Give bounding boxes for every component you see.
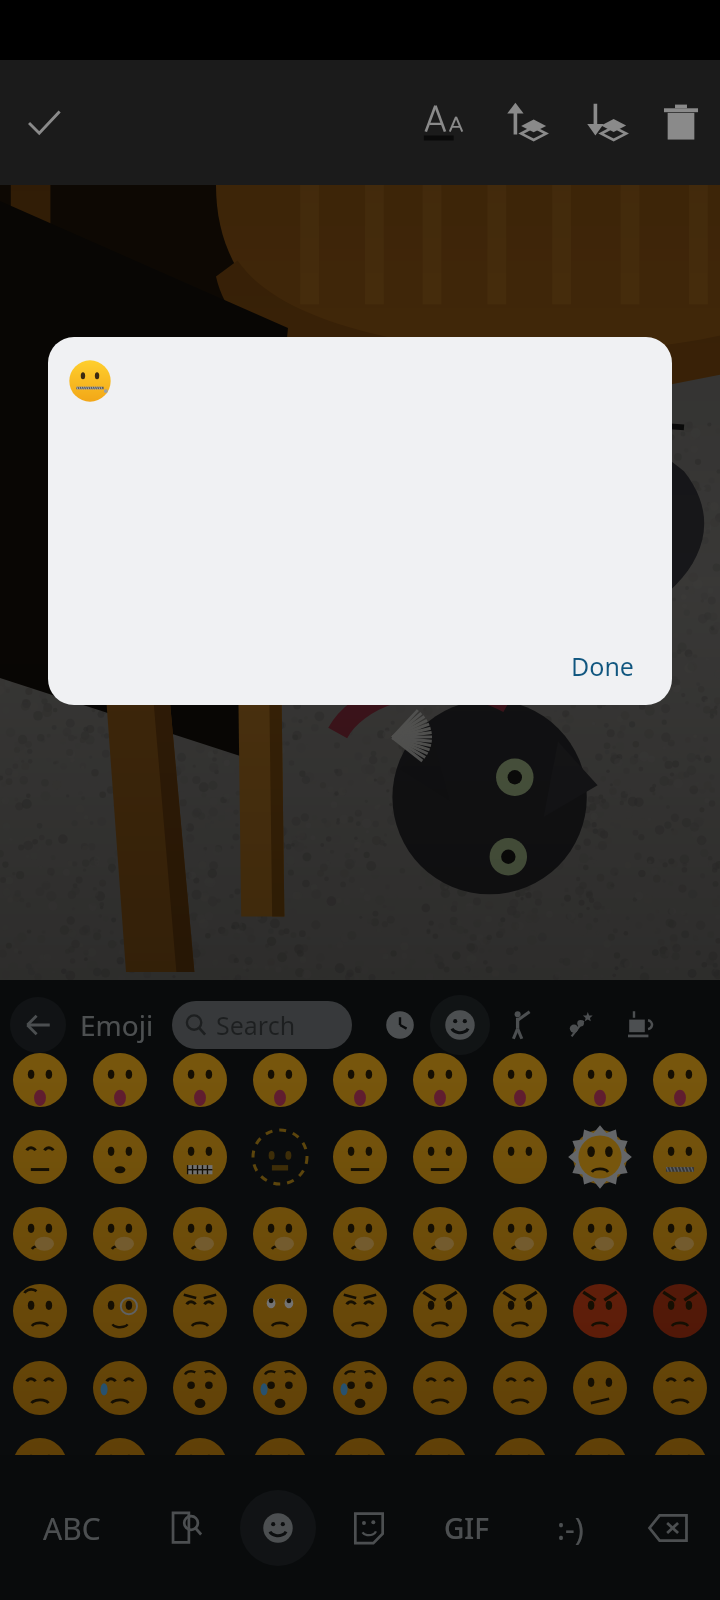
staticText: Search [216,1008,296,1042]
button[interactable]: Back [10,997,66,1053]
button[interactable]: Search [172,1001,352,1049]
button[interactable]: Nature [550,995,610,1055]
button[interactable]: People [490,995,550,1055]
button[interactable]: Backspace [628,1488,708,1568]
staticText: Done [571,649,634,683]
button[interactable]: Delete [650,92,712,154]
staticText: GIF [444,1509,490,1547]
button[interactable]: Done [553,639,652,693]
button[interactable]: GIF [422,1490,512,1566]
button[interactable]: Text style [414,92,476,154]
button[interactable]: Confirm [12,91,76,155]
staticText: ABC [43,1508,101,1549]
staticText: Emoji [80,1006,154,1044]
button[interactable]: Send to back [574,92,636,154]
button[interactable]: Emoji [240,1490,316,1566]
button[interactable]: Search emoji [146,1488,226,1568]
button[interactable]: Smileys [430,995,490,1055]
button[interactable]: Stickers [329,1488,409,1568]
button[interactable]: Recent [370,995,430,1055]
button[interactable]: ABC [12,1490,132,1566]
staticText: :-) [557,1508,584,1549]
button[interactable]: Bring to front [494,92,556,154]
button[interactable]: :-) [525,1490,615,1566]
button[interactable]: Food [610,995,670,1055]
